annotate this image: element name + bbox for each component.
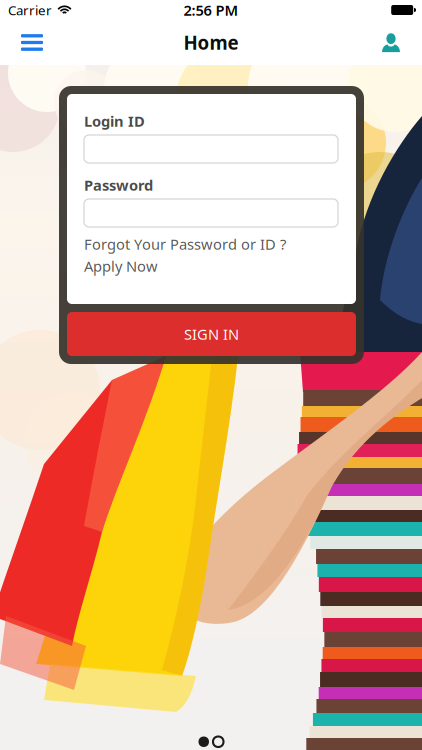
staticText: Forgot Your Password or ID ? [84,234,286,254]
staticText: Password [84,175,153,195]
staticText: Login ID [84,111,145,131]
button[interactable]: Forgot Your Password or ID ? [84,227,338,254]
button[interactable]: SIGN IN [67,312,356,356]
button[interactable]: Account [360,20,422,65]
staticText: Apply Now [84,256,158,276]
staticText: 2:56 PM [183,0,238,20]
staticText: Carrier [8,1,52,19]
staticText: Home [183,30,238,55]
button[interactable]: Apply Now [84,254,338,276]
staticText: SIGN IN [184,324,239,344]
button[interactable]: Menu [0,20,64,65]
